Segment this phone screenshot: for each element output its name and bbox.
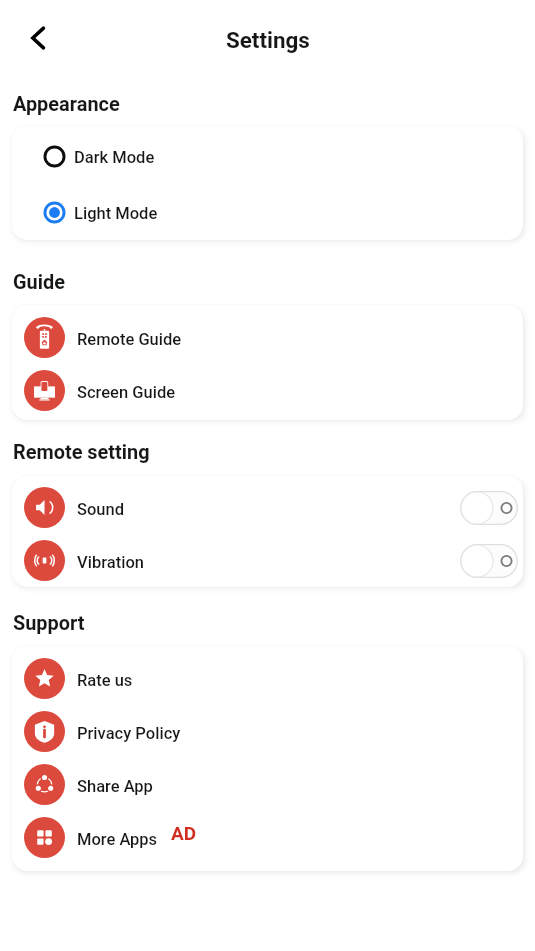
staticText: Screen Guide — [77, 383, 176, 402]
staticText: Vibration — [77, 553, 144, 572]
button[interactable]: Screen Guide — [12, 364, 523, 417]
staticText: Support — [13, 612, 85, 635]
button[interactable]: Light Mode — [12, 184, 523, 240]
button[interactable]: Sound — [12, 481, 523, 534]
staticText: Settings — [226, 27, 310, 53]
staticText: Share App — [77, 777, 153, 796]
button[interactable]: More Apps — [12, 811, 523, 864]
staticText: Remote setting — [13, 441, 150, 464]
staticText: Rate us — [77, 671, 133, 690]
staticText: Privacy Policy — [77, 724, 181, 743]
button[interactable]: Privacy Policy — [12, 705, 523, 758]
button[interactable]: Toggle Vibration — [460, 544, 518, 578]
staticText: More Apps — [77, 830, 158, 849]
staticText: Light Mode — [74, 204, 158, 223]
button[interactable]: Remote Guide — [12, 311, 523, 364]
staticText: AD — [171, 822, 197, 844]
button[interactable]: Rate us — [12, 652, 523, 705]
button[interactable]: Share App — [12, 758, 523, 811]
staticText: Dark Mode — [74, 148, 155, 167]
staticText: Guide — [13, 271, 65, 294]
button[interactable]: Dark Mode — [12, 128, 523, 184]
staticText: Appearance — [13, 93, 120, 116]
staticText: Sound — [77, 500, 125, 519]
button[interactable]: Back — [15, 15, 60, 60]
button[interactable]: Vibration — [12, 534, 523, 587]
button[interactable]: Toggle Sound — [460, 491, 518, 525]
staticText: Remote Guide — [77, 330, 182, 349]
